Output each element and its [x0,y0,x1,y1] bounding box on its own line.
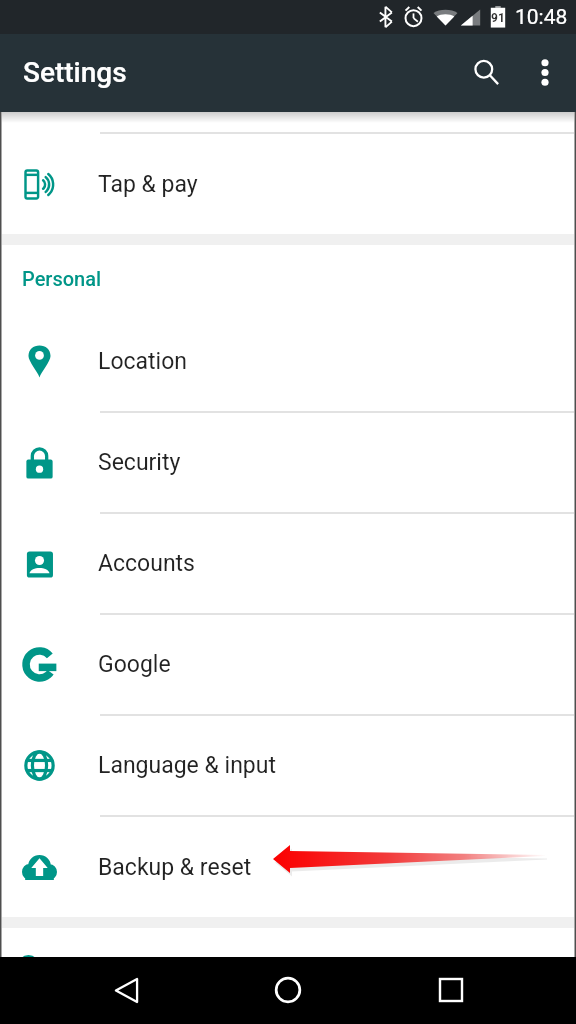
button[interactable]: Home [256,958,320,1022]
staticText: Google [98,651,171,678]
button[interactable]: Location [0,311,576,411]
staticText: 10:48 [515,5,568,30]
button[interactable]: Tap & pay [0,134,576,234]
button[interactable]: More options [517,44,573,100]
button[interactable]: Accounts [0,514,576,613]
staticText: Language & input [98,752,276,779]
button[interactable]: Google [0,615,576,714]
staticText: Accounts [98,550,195,577]
staticText: 91 [491,11,505,25]
staticText: Personal [22,267,102,290]
button[interactable]: Search [458,44,514,100]
button[interactable]: Security [0,413,576,512]
button[interactable]: Back [94,958,158,1022]
staticText: Location [98,348,187,375]
staticText: Backup & reset [98,854,252,881]
button[interactable]: Backup & reset [0,817,576,917]
button[interactable] [0,928,576,957]
staticText: Security [98,449,181,476]
staticText: Tap & pay [98,171,198,198]
button[interactable]: Recent apps [419,958,483,1022]
button[interactable]: Language & input [0,716,576,815]
staticText: Settings [23,56,127,89]
